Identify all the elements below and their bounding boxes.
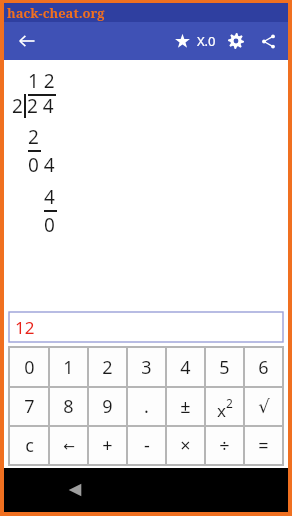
button[interactable]: Settings <box>222 27 250 55</box>
staticText: 0 <box>24 355 35 380</box>
button[interactable]: Back <box>12 26 42 56</box>
staticText: . <box>144 394 149 419</box>
staticText: 2 <box>28 124 39 150</box>
staticText: 7 <box>24 394 35 419</box>
staticText: = <box>258 433 269 458</box>
staticText: 5 <box>219 355 230 380</box>
button[interactable]: ÷ <box>206 427 243 464</box>
staticText: c <box>25 433 34 458</box>
button[interactable]: 1 <box>50 348 87 386</box>
staticText: X.0 <box>197 32 216 50</box>
staticText: - <box>144 433 150 458</box>
button[interactable]: Rate <box>169 28 195 54</box>
button[interactable]: 9 <box>89 388 126 425</box>
button[interactable]: c <box>10 427 48 464</box>
button[interactable]: 8 <box>50 388 87 425</box>
staticText: 1 2 <box>28 68 55 94</box>
button[interactable]: = <box>245 427 282 464</box>
staticText: 4 <box>44 184 55 210</box>
button[interactable]: x <box>206 388 243 425</box>
staticText: 12 <box>15 316 35 339</box>
button[interactable]: 0 <box>10 348 48 386</box>
button[interactable]: 2 <box>89 348 126 386</box>
button[interactable]: ← <box>50 427 87 464</box>
staticText: 4 <box>180 355 191 380</box>
button[interactable]: + <box>89 427 126 464</box>
button[interactable]: X.0 <box>197 32 216 50</box>
staticText: 9 <box>102 394 113 419</box>
staticText: 3 <box>141 355 152 380</box>
staticText: 0 <box>44 212 55 238</box>
staticText: 0 4 <box>28 152 55 178</box>
staticText: + <box>102 433 113 458</box>
button[interactable]: √ <box>245 388 282 425</box>
button[interactable]: ± <box>167 388 204 425</box>
staticText: ± <box>180 394 191 419</box>
button[interactable]: - <box>128 427 165 464</box>
button[interactable]: Back <box>62 477 88 503</box>
staticText: 8 <box>63 394 74 419</box>
button[interactable]: . <box>128 388 165 425</box>
button[interactable]: 5 <box>206 348 243 386</box>
staticText: 2 <box>12 93 23 119</box>
button[interactable]: 7 <box>10 388 48 425</box>
button[interactable]: Share <box>254 27 282 55</box>
staticText: 2 <box>226 395 233 411</box>
button[interactable]: 3 <box>128 348 165 386</box>
button[interactable]: 6 <box>245 348 282 386</box>
button[interactable]: 4 <box>167 348 204 386</box>
button[interactable]: × <box>167 427 204 464</box>
staticText: ÷ <box>219 433 230 458</box>
staticText: √ <box>258 396 270 417</box>
staticText: × <box>180 433 191 458</box>
staticText: 1 <box>63 355 74 380</box>
staticText: ← <box>63 438 75 454</box>
staticText: 2 4 <box>27 93 54 119</box>
staticText: 6 <box>258 355 269 380</box>
staticText: 2 <box>102 355 113 380</box>
staticText: hack-cheat.org <box>7 4 105 22</box>
button[interactable]: 12 <box>9 312 283 342</box>
staticText: x <box>217 399 226 422</box>
